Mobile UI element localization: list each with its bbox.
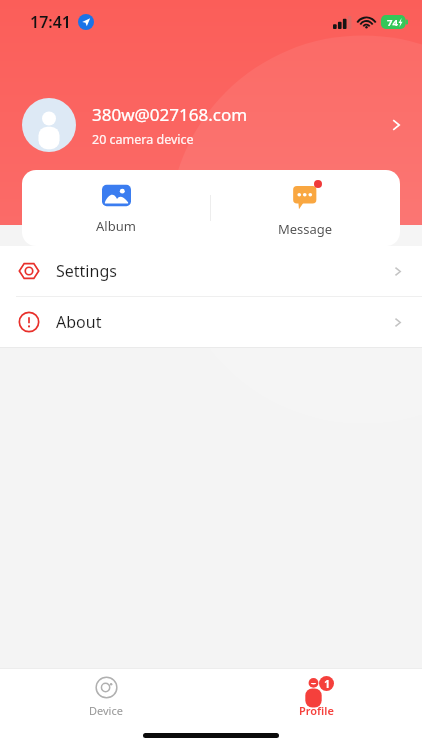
other: Profile — [300, 676, 334, 699]
button[interactable]: Message — [211, 170, 400, 246]
button[interactable]: Device — [0, 669, 211, 725]
other: Device — [95, 676, 118, 699]
staticText: 1 — [324, 677, 330, 691]
button[interactable]: Settings — [0, 246, 422, 296]
staticText: 380w@027168.com — [92, 103, 248, 126]
button[interactable]: Profile — [211, 669, 422, 725]
button[interactable]: 380w@027168.com — [0, 88, 422, 162]
button[interactable]: About — [0, 297, 422, 347]
staticText: Album — [96, 217, 136, 235]
button[interactable]: Album — [22, 170, 210, 246]
staticText: Settings — [56, 260, 389, 282]
staticText: 17:41 — [30, 11, 72, 33]
staticText: 74 — [387, 16, 398, 29]
staticText: About — [56, 311, 389, 333]
staticText: 20 camera device — [92, 131, 194, 148]
staticText: Profile — [299, 703, 334, 718]
staticText: Message — [278, 220, 333, 238]
staticText: Device — [89, 703, 123, 718]
